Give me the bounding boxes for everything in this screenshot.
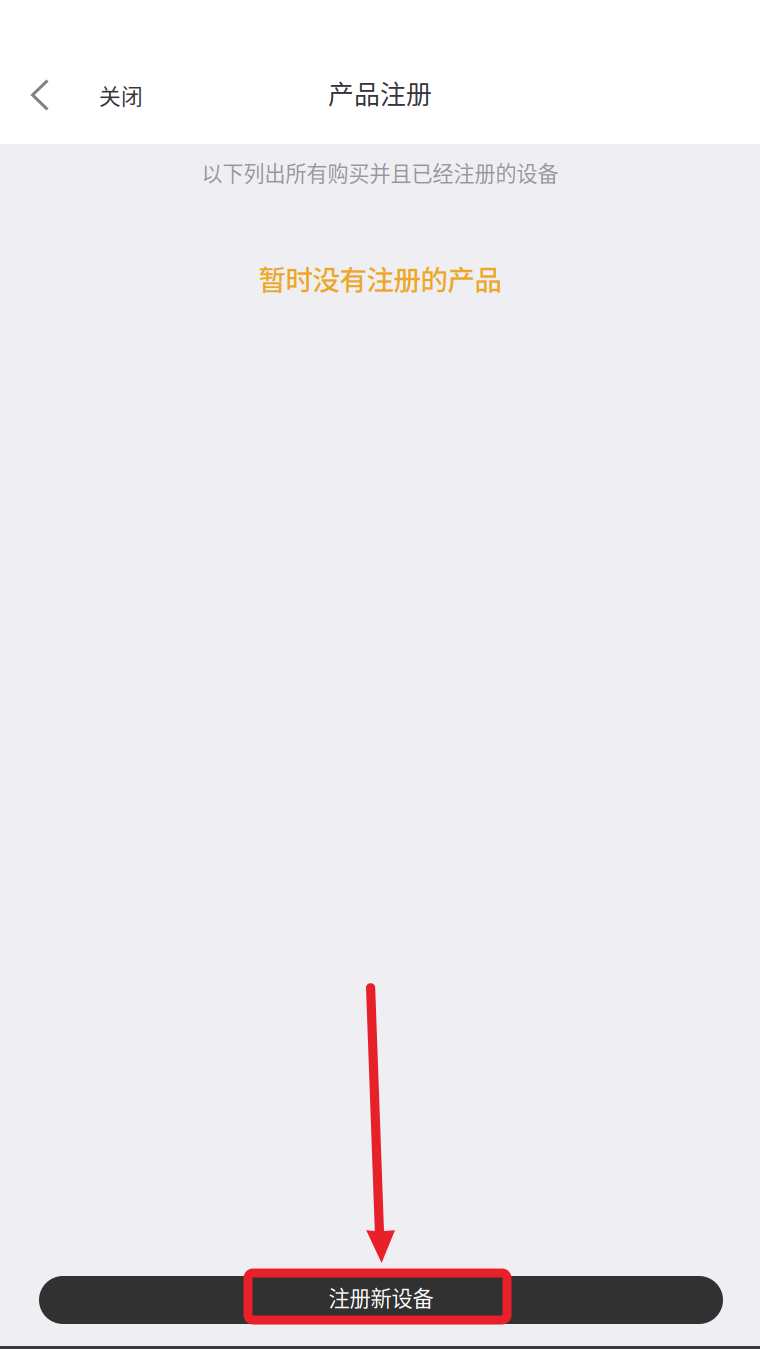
staticText: 产品注册 (328, 74, 432, 111)
staticText: 关闭 (99, 79, 143, 111)
staticText: 暂时没有注册的产品 (258, 258, 501, 298)
button[interactable]: 关闭 (0, 0, 230, 144)
button[interactable]: 注册新设备 (39, 1276, 723, 1324)
staticText: 以下列出所有购买并且已经注册的设备 (201, 157, 558, 187)
staticText: 注册新设备 (328, 1282, 433, 1312)
